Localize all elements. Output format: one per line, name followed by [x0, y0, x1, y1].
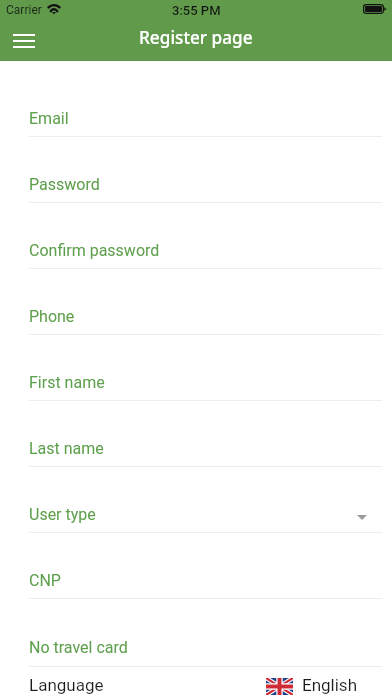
button[interactable]: User type: [0, 467, 392, 533]
button[interactable]: Phone: [0, 269, 392, 335]
button[interactable]: Language: [0, 670, 392, 696]
button[interactable]: Menu: [0, 20, 46, 61]
button[interactable]: No travel card: [0, 599, 392, 666]
staticText: Password: [29, 175, 100, 194]
staticText: Carrier: [6, 3, 42, 17]
staticText: User type: [29, 505, 96, 524]
staticText: Email: [29, 109, 69, 128]
staticText: Language: [29, 675, 104, 695]
staticText: 3:55 PM: [172, 3, 221, 18]
staticText: No travel card: [29, 638, 128, 657]
staticText: Last name: [29, 439, 104, 458]
button[interactable]: Confirm password: [0, 203, 392, 269]
button[interactable]: Password: [0, 137, 392, 203]
button[interactable]: Last name: [0, 401, 392, 467]
staticText: Register page: [139, 26, 253, 49]
button[interactable]: First name: [0, 335, 392, 401]
button[interactable]: CNP: [0, 533, 392, 599]
staticText: CNP: [29, 571, 61, 590]
staticText: Phone: [29, 307, 75, 326]
staticText: Confirm password: [29, 241, 160, 260]
staticText: First name: [29, 373, 105, 392]
button[interactable]: Email: [0, 71, 392, 137]
staticText: English: [302, 675, 358, 695]
